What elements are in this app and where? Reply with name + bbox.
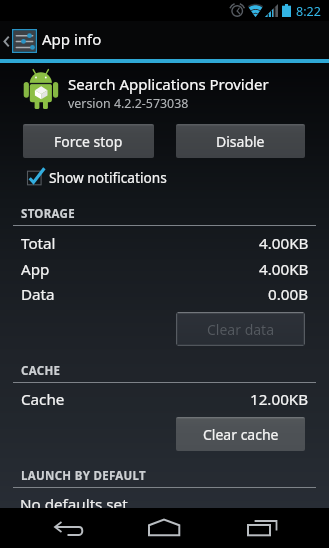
staticText: Cache: [21, 389, 65, 410]
button[interactable]: Total: [0, 231, 329, 256]
staticText: 12.00KB: [250, 389, 309, 410]
staticText: Clear data: [207, 320, 275, 339]
staticText: App info: [42, 29, 102, 49]
button[interactable]: Navigate up: [0, 21, 329, 59]
staticText: version 4.2.2-573038: [68, 95, 189, 112]
button[interactable]: Home: [137, 508, 192, 548]
staticText: CACHE: [21, 363, 61, 379]
staticText: Disable: [216, 132, 265, 151]
staticText: 0.00B: [268, 284, 309, 305]
button[interactable]: Back: [41, 508, 96, 548]
staticText: Search Applications Provider: [68, 74, 269, 94]
staticText: LAUNCH BY DEFAULT: [21, 468, 146, 484]
button[interactable]: Clear cache: [176, 417, 305, 451]
staticText: Force stop: [54, 132, 123, 151]
staticText: No defaults set.: [20, 494, 132, 515]
staticText: Show notifications: [49, 168, 167, 187]
staticText: 4.00KB: [259, 259, 309, 280]
staticText: 8:22: [296, 3, 321, 20]
staticText: App: [21, 259, 50, 280]
staticText: Data: [21, 284, 55, 305]
button[interactable]: Recent apps: [234, 508, 289, 548]
button[interactable]: Disable: [176, 124, 305, 158]
button[interactable]: Clear data: [176, 312, 305, 346]
button[interactable]: Data: [0, 282, 329, 307]
button[interactable]: Force stop: [23, 124, 154, 158]
staticText: 4.00KB: [259, 233, 309, 254]
staticText: STORAGE: [21, 206, 75, 222]
button[interactable]: App: [0, 257, 329, 282]
staticText: Total: [21, 233, 56, 254]
staticText: Clear cache: [203, 425, 279, 444]
button[interactable]: Show notifications: [27, 167, 167, 187]
button[interactable]: Cache: [0, 387, 329, 412]
